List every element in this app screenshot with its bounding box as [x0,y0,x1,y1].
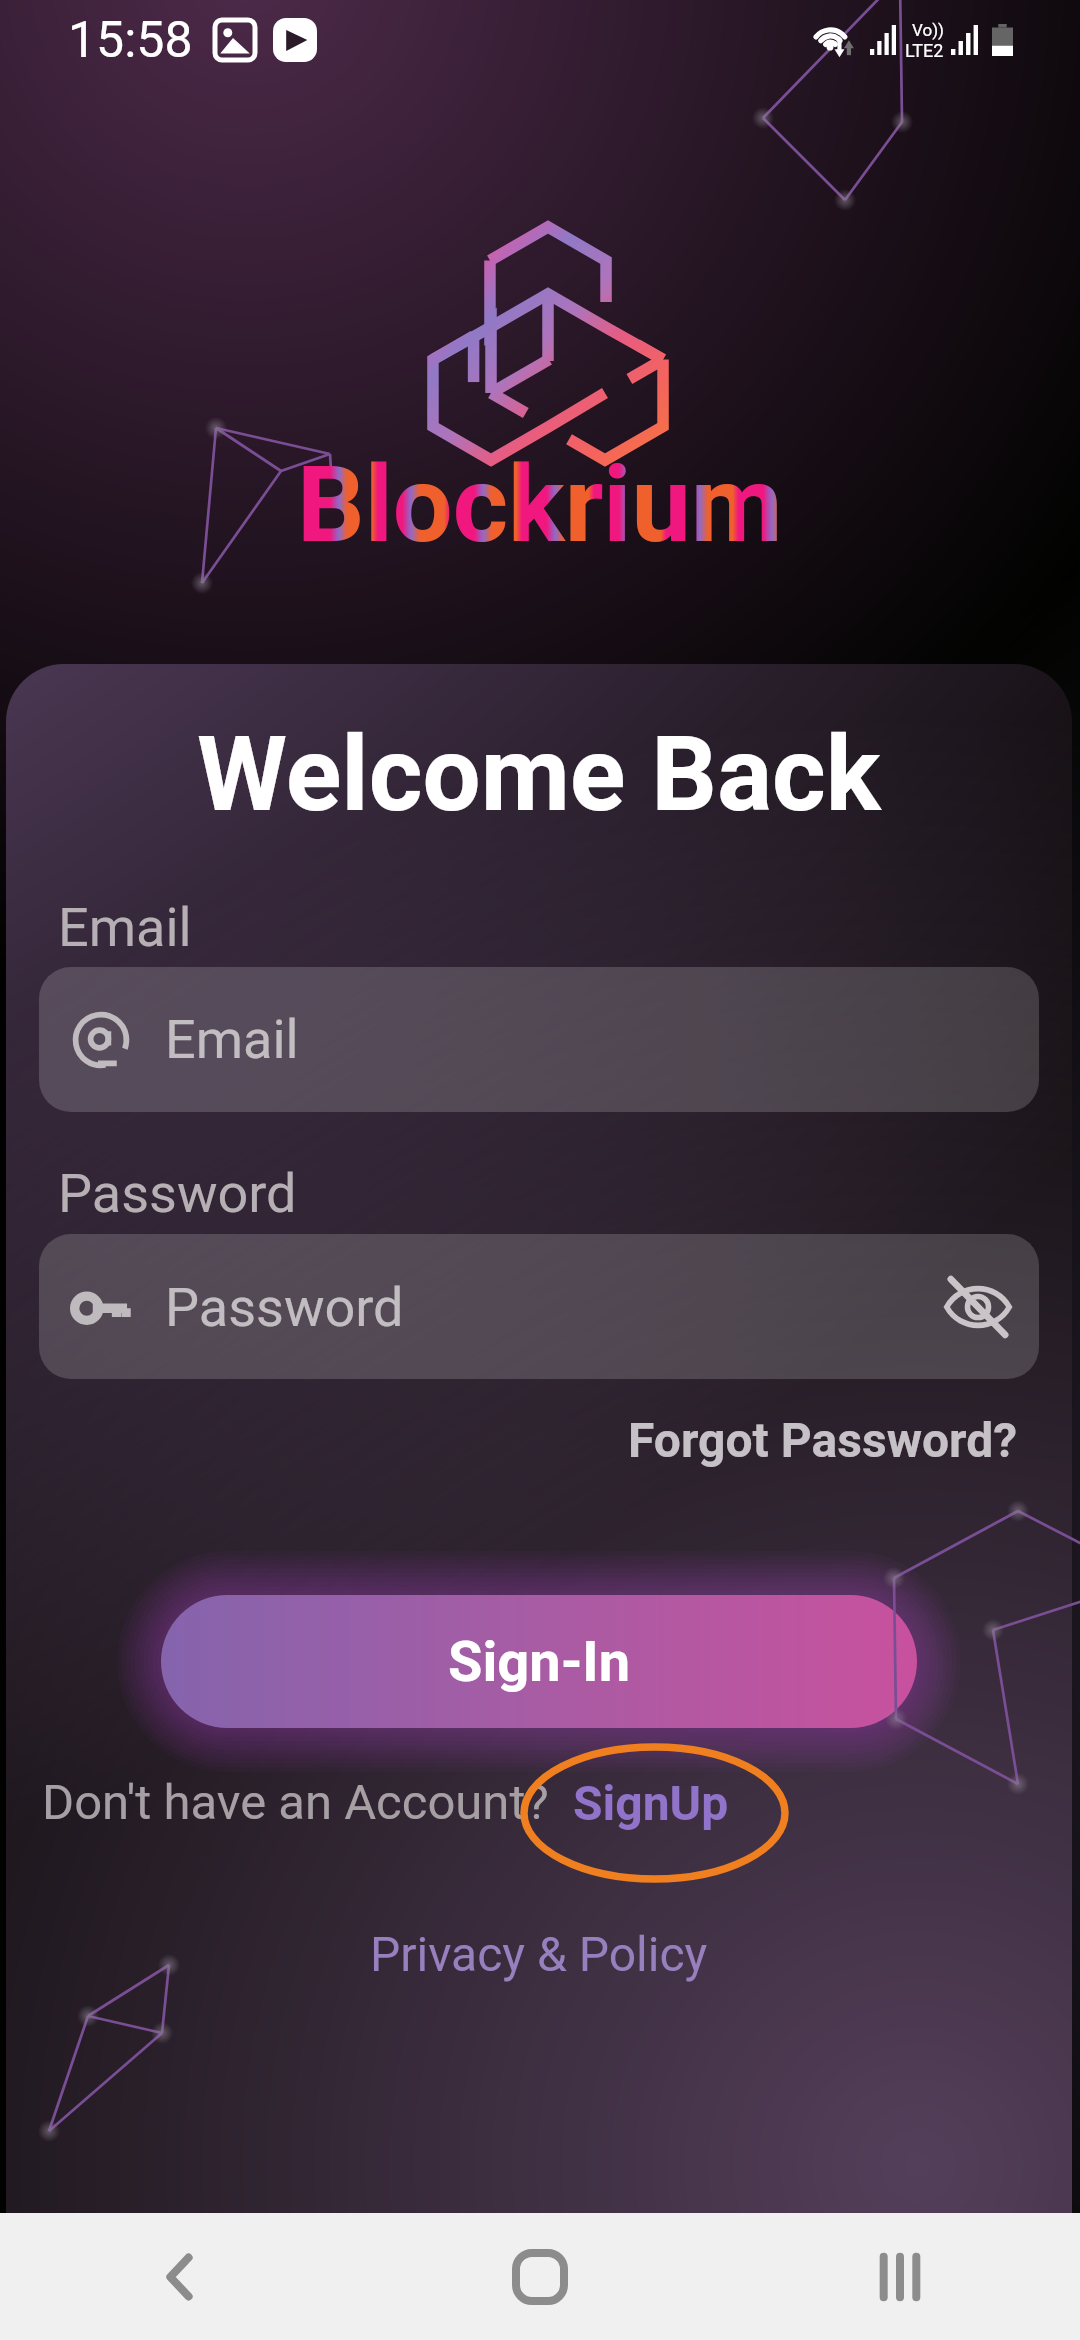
staticText: SignUp [573,1775,729,1831]
staticText: Email [58,896,192,959]
button[interactable]: Privacy & Policy [370,1926,708,1982]
staticText: Email [165,1008,299,1071]
staticText: Password [165,1276,404,1339]
staticText: Privacy & Policy [370,1926,708,1982]
staticText: Welcome Back [6,714,1072,835]
button[interactable]: Back [0,2213,360,2340]
staticText: LTE2 [905,40,944,61]
button[interactable]: Show password [923,1252,1033,1362]
staticText: Don't have an Account? [42,1774,549,1831]
button[interactable]: Sign-In [161,1595,917,1728]
staticText: Password [58,1162,297,1225]
button[interactable]: Home [360,2213,720,2340]
button[interactable]: Email [39,967,1039,1112]
staticText: Forgot Password? [628,1412,1018,1468]
button[interactable]: Forgot Password? [628,1412,1018,1468]
staticText: Sign-In [448,1629,631,1695]
button[interactable]: SignUp [573,1775,729,1831]
button[interactable]: Password [39,1234,1039,1379]
staticText: Vo)) [912,20,944,40]
button[interactable]: Recent apps [720,2213,1080,2340]
staticText: 15:58 [68,11,193,70]
staticText: Blockrium [297,443,783,567]
